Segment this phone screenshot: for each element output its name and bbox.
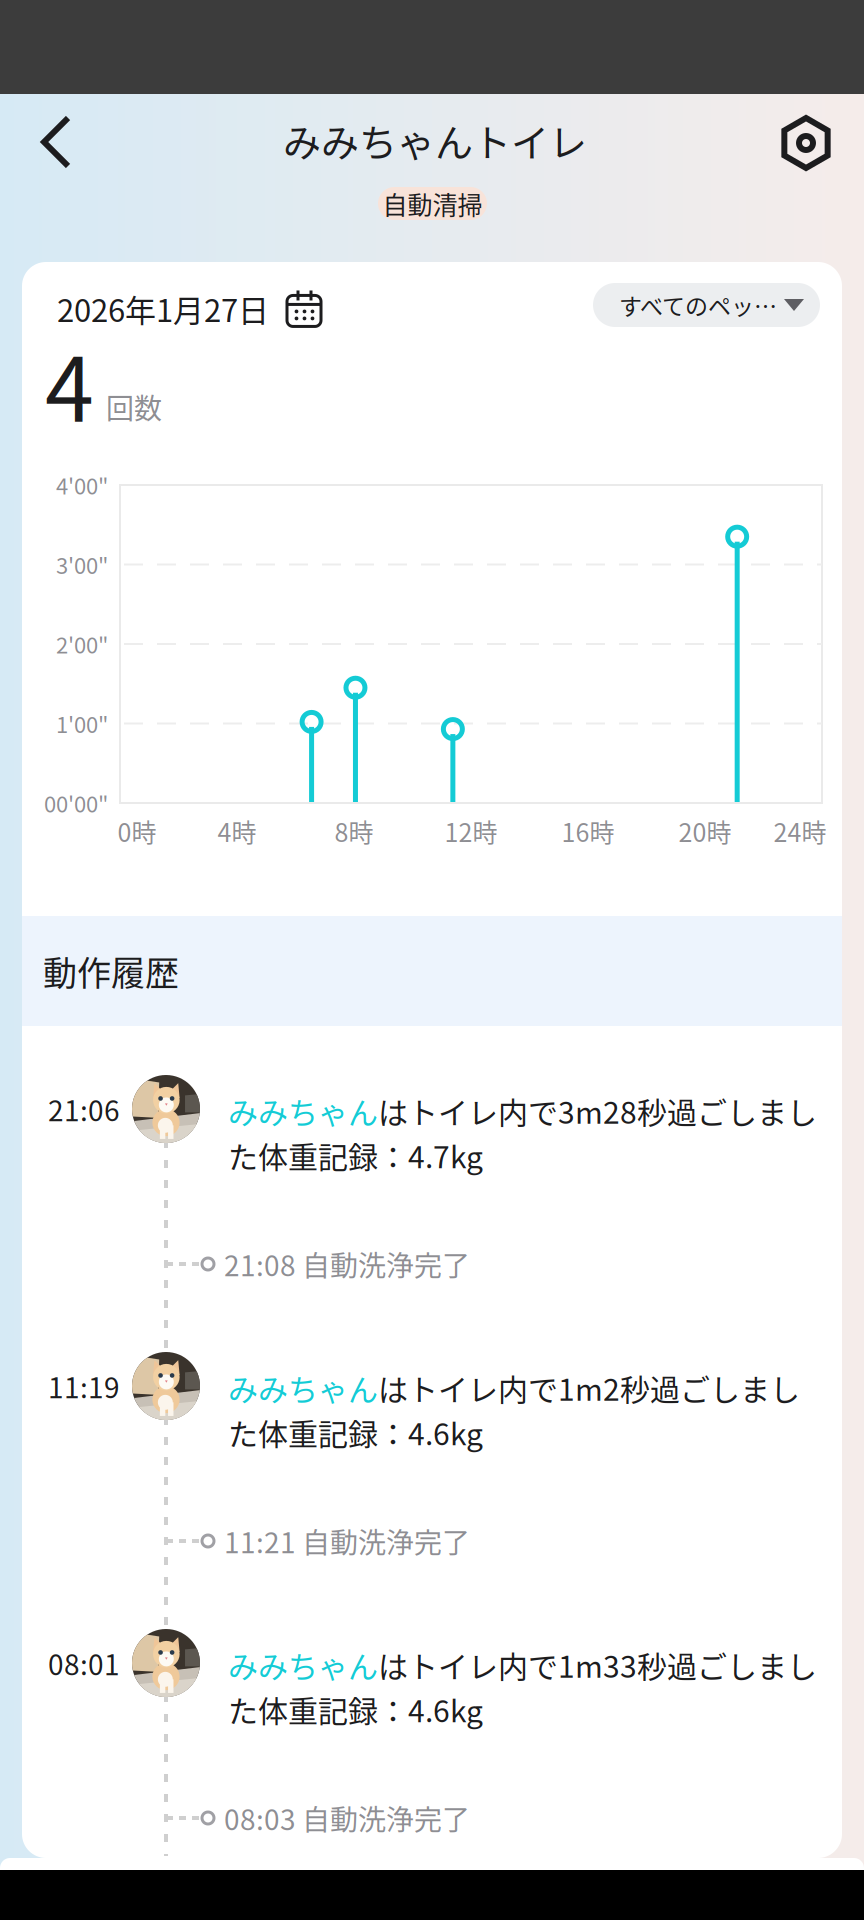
- staticText: はトイレ内で1m2秒過ごしまし: [378, 1366, 800, 1409]
- staticText: すべてのペッ…: [619, 288, 777, 322]
- staticText: 21:08 自動洗浄完了: [224, 1244, 470, 1284]
- staticText: 3'00": [56, 549, 108, 580]
- button[interactable]: Settings: [770, 112, 842, 174]
- staticText: 0時: [117, 813, 156, 849]
- button[interactable]: すべてのペッ…: [593, 283, 820, 327]
- staticText: 4時: [217, 813, 256, 849]
- staticText: 1'00": [56, 708, 108, 739]
- staticText: 8時: [334, 813, 373, 849]
- staticText: はトイレ内で1m33秒過ごしまし: [378, 1643, 817, 1686]
- staticText: 08:01: [48, 1643, 120, 1683]
- staticText: た体重記録：4.6kg: [228, 1687, 483, 1731]
- staticText: 4'00": [56, 469, 108, 501]
- staticText: 20時: [678, 813, 731, 849]
- staticText: みみちゃんトイレ: [283, 112, 587, 167]
- staticText: た体重記録：4.7kg: [228, 1133, 483, 1177]
- staticText: 回数: [106, 386, 162, 427]
- staticText: た体重記録：4.6kg: [228, 1410, 483, 1454]
- staticText: 自動清掃: [382, 185, 482, 222]
- staticText: 12時: [444, 813, 497, 849]
- staticText: 動作履歴: [43, 946, 179, 996]
- staticText: 11:19: [48, 1366, 120, 1406]
- staticText: みみちゃん: [228, 1366, 378, 1409]
- staticText: 2026年1月27日: [57, 286, 269, 331]
- staticText: みみちゃん: [228, 1643, 378, 1686]
- staticText: 21:06: [48, 1089, 120, 1129]
- button[interactable]: Back: [18, 108, 96, 176]
- staticText: 24時: [773, 813, 826, 849]
- staticText: 2'00": [56, 628, 108, 660]
- staticText: 00'00": [44, 787, 108, 819]
- staticText: 08:03 自動洗浄完了: [224, 1798, 470, 1838]
- staticText: みみちゃん: [228, 1089, 378, 1132]
- staticText: 11:21 自動洗浄完了: [224, 1521, 470, 1561]
- staticText: はトイレ内で3m28秒過ごしまし: [378, 1089, 817, 1132]
- staticText: 16時: [561, 813, 614, 849]
- staticText: 4: [45, 320, 94, 447]
